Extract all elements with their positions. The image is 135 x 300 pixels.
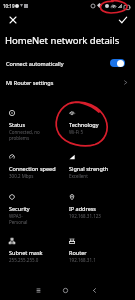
staticText: 300.2 Mbps xyxy=(9,173,41,179)
staticText: HomeNet network details xyxy=(5,34,120,47)
staticText: Connection speed xyxy=(9,165,56,172)
button[interactable]: Back xyxy=(87,283,101,297)
staticText: Excellent xyxy=(69,173,101,179)
staticText: 192.168.31.1 xyxy=(69,257,101,263)
button[interactable]: Router xyxy=(60,234,135,263)
staticText: Technology xyxy=(69,121,99,128)
staticText: Signal strength xyxy=(69,165,109,172)
staticText: Router xyxy=(69,249,87,256)
button[interactable]: Security xyxy=(0,190,60,225)
button[interactable]: Mi Router settings xyxy=(0,73,135,91)
staticText: Connect automatically xyxy=(6,60,64,67)
staticText: Connected, no problems xyxy=(9,129,41,141)
staticText: 192.168.31.123 xyxy=(69,213,101,219)
staticText: Subnet mask xyxy=(9,249,43,256)
staticText: WPA3-Personal xyxy=(9,213,41,225)
staticText: Security xyxy=(9,205,30,212)
button[interactable]: Signal strength xyxy=(60,150,135,179)
button[interactable]: Confirm xyxy=(115,12,130,27)
button[interactable]: Recents xyxy=(31,283,45,297)
staticText: Wi-Fi 5 xyxy=(69,129,101,135)
staticText: 10:19 xyxy=(3,3,15,9)
button[interactable]: Connect automatically xyxy=(0,54,135,72)
button[interactable]: Status xyxy=(0,106,60,141)
button[interactable]: IP address xyxy=(60,190,135,219)
button[interactable]: Close xyxy=(5,12,20,27)
staticText: 255.255.255.0 xyxy=(9,257,41,263)
staticText: Status xyxy=(9,121,26,128)
button[interactable]: Home xyxy=(58,283,72,297)
button[interactable]: Technology xyxy=(60,106,135,135)
staticText: Mi Router settings xyxy=(6,79,54,86)
button[interactable]: Subnet mask xyxy=(0,234,60,263)
button[interactable]: Connection speed xyxy=(0,150,60,179)
staticText: IP address xyxy=(69,205,97,212)
